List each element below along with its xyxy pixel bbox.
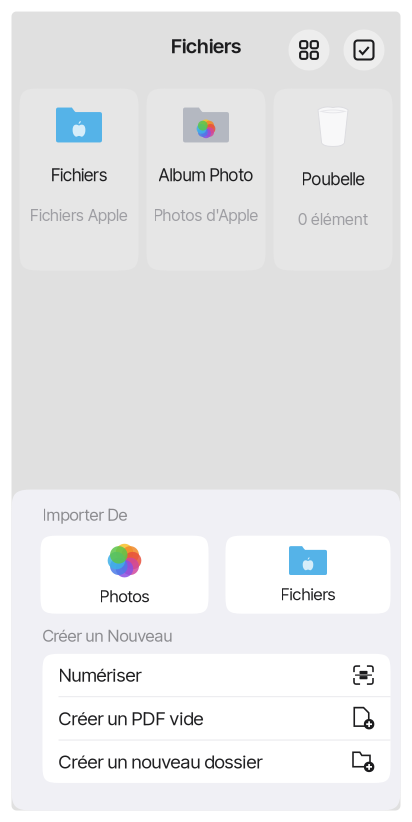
staticText: Fichiers (51, 164, 107, 185)
button[interactable]: Album Photo (146, 88, 265, 270)
staticText: Créer un PDF vide (58, 707, 203, 730)
staticText: 0 élément (298, 209, 368, 229)
staticText: Importer De (42, 504, 127, 525)
staticText: Créer un Nouveau (42, 626, 172, 646)
button[interactable]: Fichiers (225, 536, 390, 614)
staticText: Poubelle (301, 168, 364, 189)
staticText: Numériser (58, 664, 141, 686)
button[interactable]: Fichiers (19, 88, 138, 270)
staticText: Photos (99, 586, 149, 606)
staticText: Fichiers (171, 34, 241, 58)
staticText: Album Photo (158, 164, 253, 185)
staticText: Fichiers Apple (30, 205, 128, 225)
staticText: Créer un nouveau dossier (58, 750, 262, 773)
button[interactable]: Sélectionner (343, 29, 384, 70)
staticText: Photos d'Apple (153, 205, 258, 225)
button[interactable]: Affichage en grille (288, 29, 329, 70)
button[interactable]: Poubelle (273, 88, 392, 270)
button[interactable]: Photos (40, 536, 208, 614)
button[interactable]: Créer un PDF vide (42, 697, 390, 740)
button[interactable]: Numériser (42, 654, 390, 696)
staticText: Fichiers (280, 584, 335, 604)
button[interactable]: Créer un nouveau dossier (42, 740, 390, 783)
